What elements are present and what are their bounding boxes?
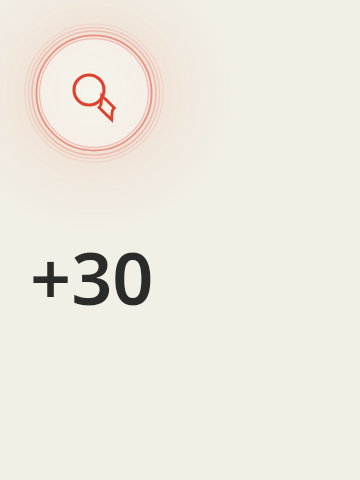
button[interactable]: Search <box>36 35 152 151</box>
button[interactable]: +30 <box>30 228 220 312</box>
staticText: +30 <box>30 228 154 312</box>
